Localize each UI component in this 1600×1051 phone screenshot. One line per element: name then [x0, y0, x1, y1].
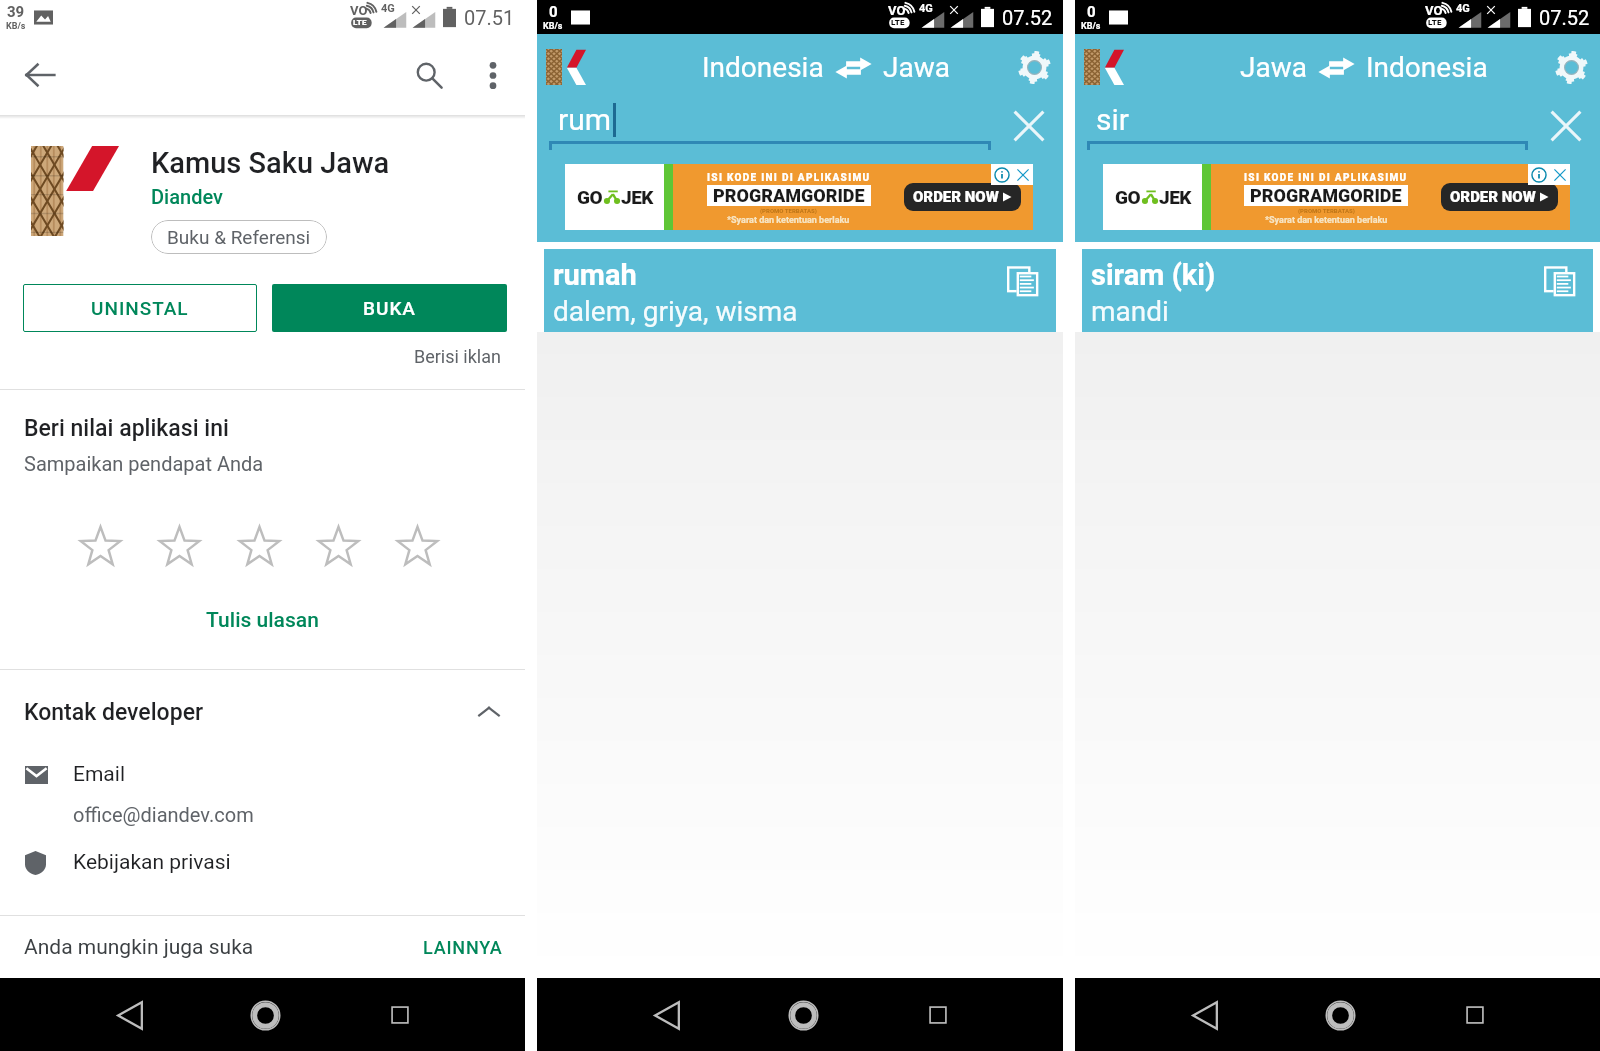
button[interactable]: Close ad [1549, 164, 1570, 185]
button[interactable]: Indonesia [702, 51, 950, 84]
staticText: Kebijakan privasi [73, 850, 231, 875]
button[interactable]: Copy [1000, 258, 1046, 304]
button[interactable]: Jawa [1240, 51, 1488, 84]
button[interactable]: Kebijakan privasi [0, 850, 525, 875]
staticText: Tulis ulasan [206, 608, 319, 633]
button[interactable]: Back [1180, 990, 1230, 1040]
staticText: Indonesia [1366, 51, 1488, 84]
staticText: 4G [381, 2, 395, 15]
staticText: LTE [353, 18, 367, 27]
staticText: KB/s [6, 21, 26, 32]
staticText: PROGRAMGORIDE [713, 185, 865, 206]
staticText: Indonesia [702, 51, 824, 84]
staticText: ORDER NOW [913, 188, 999, 206]
button[interactable]: Recents [375, 990, 425, 1040]
staticText: VO [888, 3, 906, 18]
button[interactable]: Back [16, 51, 64, 99]
staticText: KB/s [1081, 21, 1101, 32]
staticText: rumah [553, 258, 637, 292]
staticText: JEK [621, 186, 653, 208]
staticText: 4G [919, 2, 933, 15]
staticText: 39 [7, 3, 25, 21]
staticText: (PROMO TERBATAS) [760, 207, 817, 214]
staticText: mandi [1091, 295, 1169, 328]
button[interactable]: BUKA [272, 284, 507, 332]
button[interactable]: Rate 5 stars [392, 522, 442, 572]
staticText: LTE [891, 18, 905, 27]
staticText: ISI KODE INI DI APLIKASIMU [1244, 172, 1408, 184]
staticText: 0 [1087, 3, 1096, 21]
staticText: Diandev [151, 185, 223, 208]
button[interactable]: More options [471, 53, 515, 97]
staticText: PROGRAMGORIDE [1250, 185, 1402, 206]
button[interactable]: Buku & Referensi [151, 220, 327, 254]
staticText: 0 [549, 3, 558, 21]
button[interactable]: Home [1315, 990, 1365, 1040]
button[interactable]: Rate 2 stars [154, 522, 204, 572]
staticText: siram (ki) [1091, 258, 1216, 292]
staticText: ORDER NOW [1450, 188, 1536, 206]
button[interactable]: Settings [1548, 44, 1594, 90]
button[interactable]: Ad info [1528, 164, 1549, 185]
staticText: rum [558, 102, 612, 137]
staticText: ISI KODE INI DI APLIKASIMU [707, 172, 871, 184]
staticText: 07.51 [464, 6, 515, 29]
staticText: 4G [1456, 2, 1470, 15]
staticText: Berisi iklan [414, 346, 501, 367]
button[interactable]: Email [0, 762, 525, 826]
staticText: 07.52 [1539, 6, 1590, 29]
button[interactable]: Anda mungkin juga suka [0, 916, 525, 978]
staticText: LAINNYA [423, 937, 503, 958]
button[interactable]: Clear [1003, 100, 1055, 152]
staticText: Buku & Referensi [167, 226, 311, 248]
button[interactable]: Recents [913, 990, 963, 1040]
staticText: Beri nilai aplikasi ini [24, 415, 229, 442]
button[interactable]: Tulis ulasan [0, 608, 525, 633]
button[interactable]: Kontak developer [0, 698, 525, 726]
staticText: (PROMO TERBATAS) [1298, 207, 1355, 214]
staticText: Jawa [883, 51, 950, 84]
staticText: VO [350, 3, 368, 18]
staticText: *Syarat dan ketentuan berlaku [1265, 215, 1388, 226]
button[interactable]: Clear [1540, 100, 1592, 152]
button[interactable]: Copy [1537, 258, 1583, 304]
staticText: GO [1115, 186, 1141, 208]
staticText: VO [1425, 3, 1443, 18]
button[interactable]: ORDER NOW [904, 183, 1021, 211]
button[interactable]: Ad info [991, 164, 1012, 185]
staticText: sir [1096, 102, 1129, 137]
button[interactable]: Back [105, 990, 155, 1040]
staticText: Sampaikan pendapat Anda [24, 452, 264, 475]
button[interactable]: Home [240, 990, 290, 1040]
staticText: Email [73, 762, 125, 787]
button[interactable]: Rate 3 stars [234, 522, 284, 572]
button[interactable]: ORDER NOW [1441, 183, 1558, 211]
staticText: Kamus Saku Jawa [151, 146, 390, 180]
staticText: GO [577, 186, 603, 208]
staticText: Jawa [1240, 51, 1307, 84]
button[interactable]: Settings [1011, 44, 1057, 90]
button[interactable]: Recents [1450, 990, 1500, 1040]
button[interactable]: Rate 1 stars [75, 522, 125, 572]
staticText: Kontak developer [24, 699, 204, 726]
staticText: UNINSTAL [91, 297, 189, 319]
button[interactable]: Home [778, 990, 828, 1040]
staticText: office@diandev.com [73, 803, 254, 826]
staticText: *Syarat dan ketentuan berlaku [727, 215, 850, 226]
staticText: 07.52 [1002, 6, 1053, 29]
staticText: Anda mungkin juga suka [24, 935, 254, 960]
button[interactable]: UNINSTAL [23, 284, 257, 332]
staticText: dalem, griya, wisma [553, 295, 798, 328]
staticText: BUKA [363, 297, 417, 319]
button[interactable]: Rate 4 stars [313, 522, 363, 572]
staticText: KB/s [543, 21, 563, 32]
button[interactable]: rumah [544, 249, 1056, 332]
button[interactable]: Back [642, 990, 692, 1040]
button[interactable]: Search [405, 51, 453, 99]
button[interactable]: Close ad [1012, 164, 1033, 185]
staticText: LTE [1428, 18, 1442, 27]
button[interactable]: siram (ki) [1082, 249, 1593, 332]
staticText: JEK [1159, 186, 1191, 208]
